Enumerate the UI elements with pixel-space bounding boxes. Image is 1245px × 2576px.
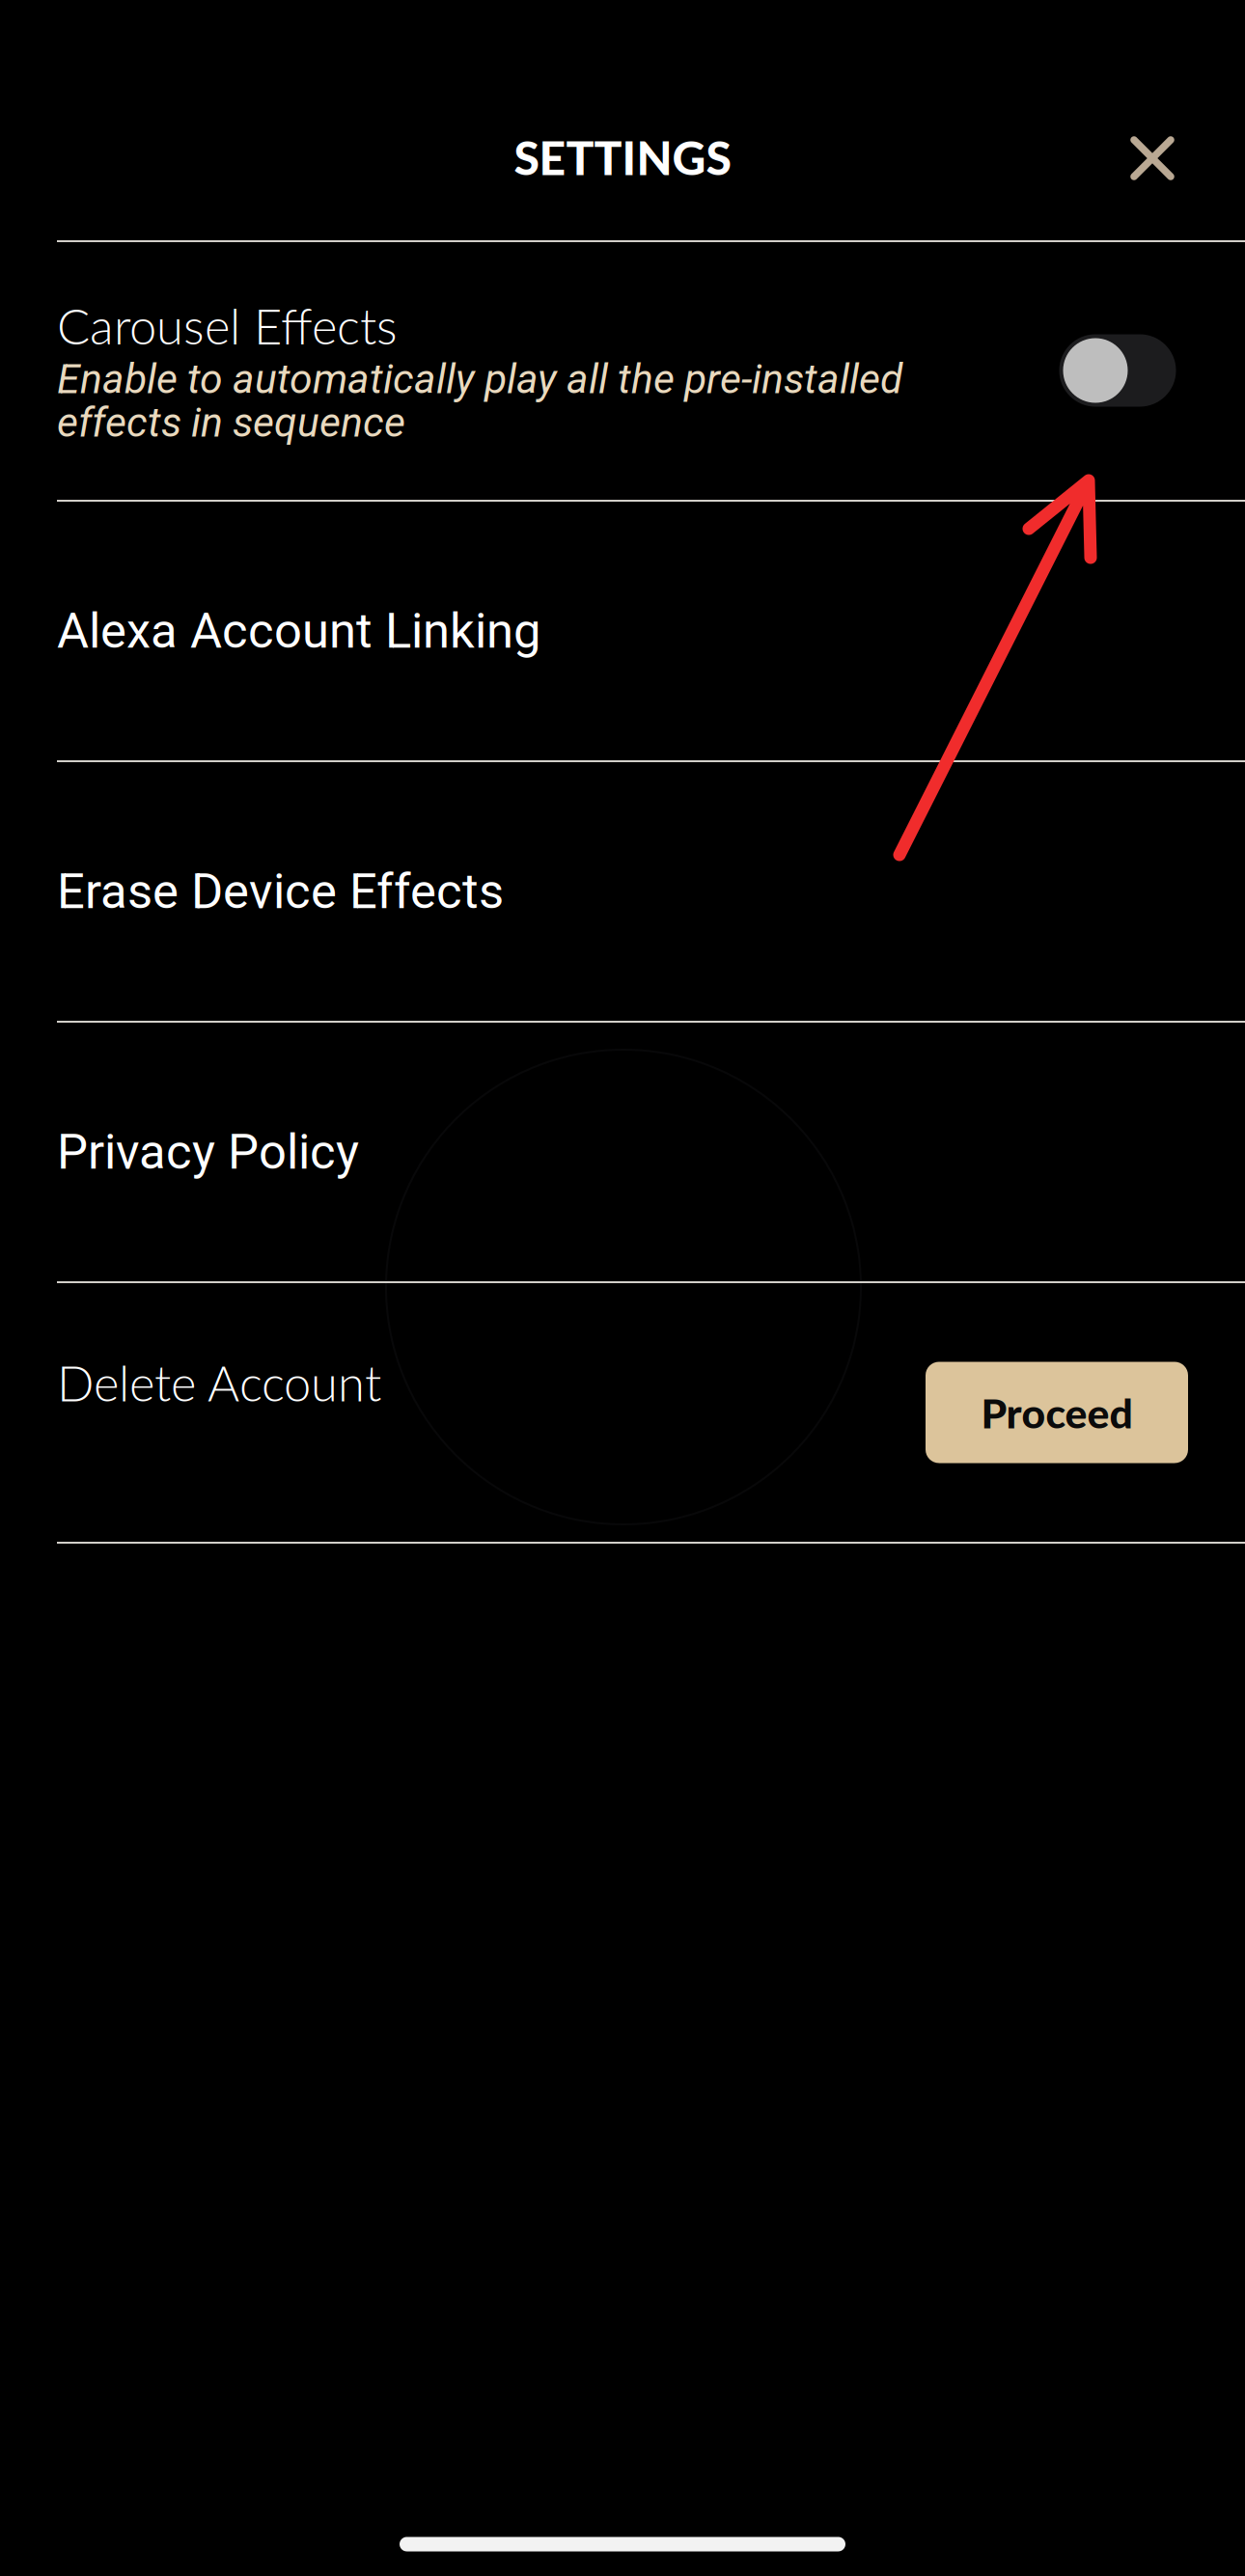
staticText: Alexa Account Linking — [57, 602, 540, 660]
staticText: Privacy Policy — [57, 1123, 359, 1181]
staticText: SETTINGS — [514, 129, 731, 185]
button[interactable]: Carousel Effects — [1059, 334, 1176, 407]
button[interactable]: Privacy Policy — [0, 1022, 1245, 1282]
button[interactable]: Erase Device Effects — [0, 761, 1245, 1022]
staticText: Enable to automatically play all the pre… — [57, 355, 902, 447]
button[interactable]: Alexa Account Linking — [0, 501, 1245, 761]
staticText: Carousel Effects — [57, 296, 398, 355]
staticText: Delete Account — [57, 1353, 381, 1412]
button[interactable]: Close — [1089, 95, 1216, 222]
staticText: Erase Device Effects — [57, 863, 504, 920]
button[interactable]: Proceed — [926, 1362, 1188, 1463]
staticText: Proceed — [981, 1388, 1133, 1437]
